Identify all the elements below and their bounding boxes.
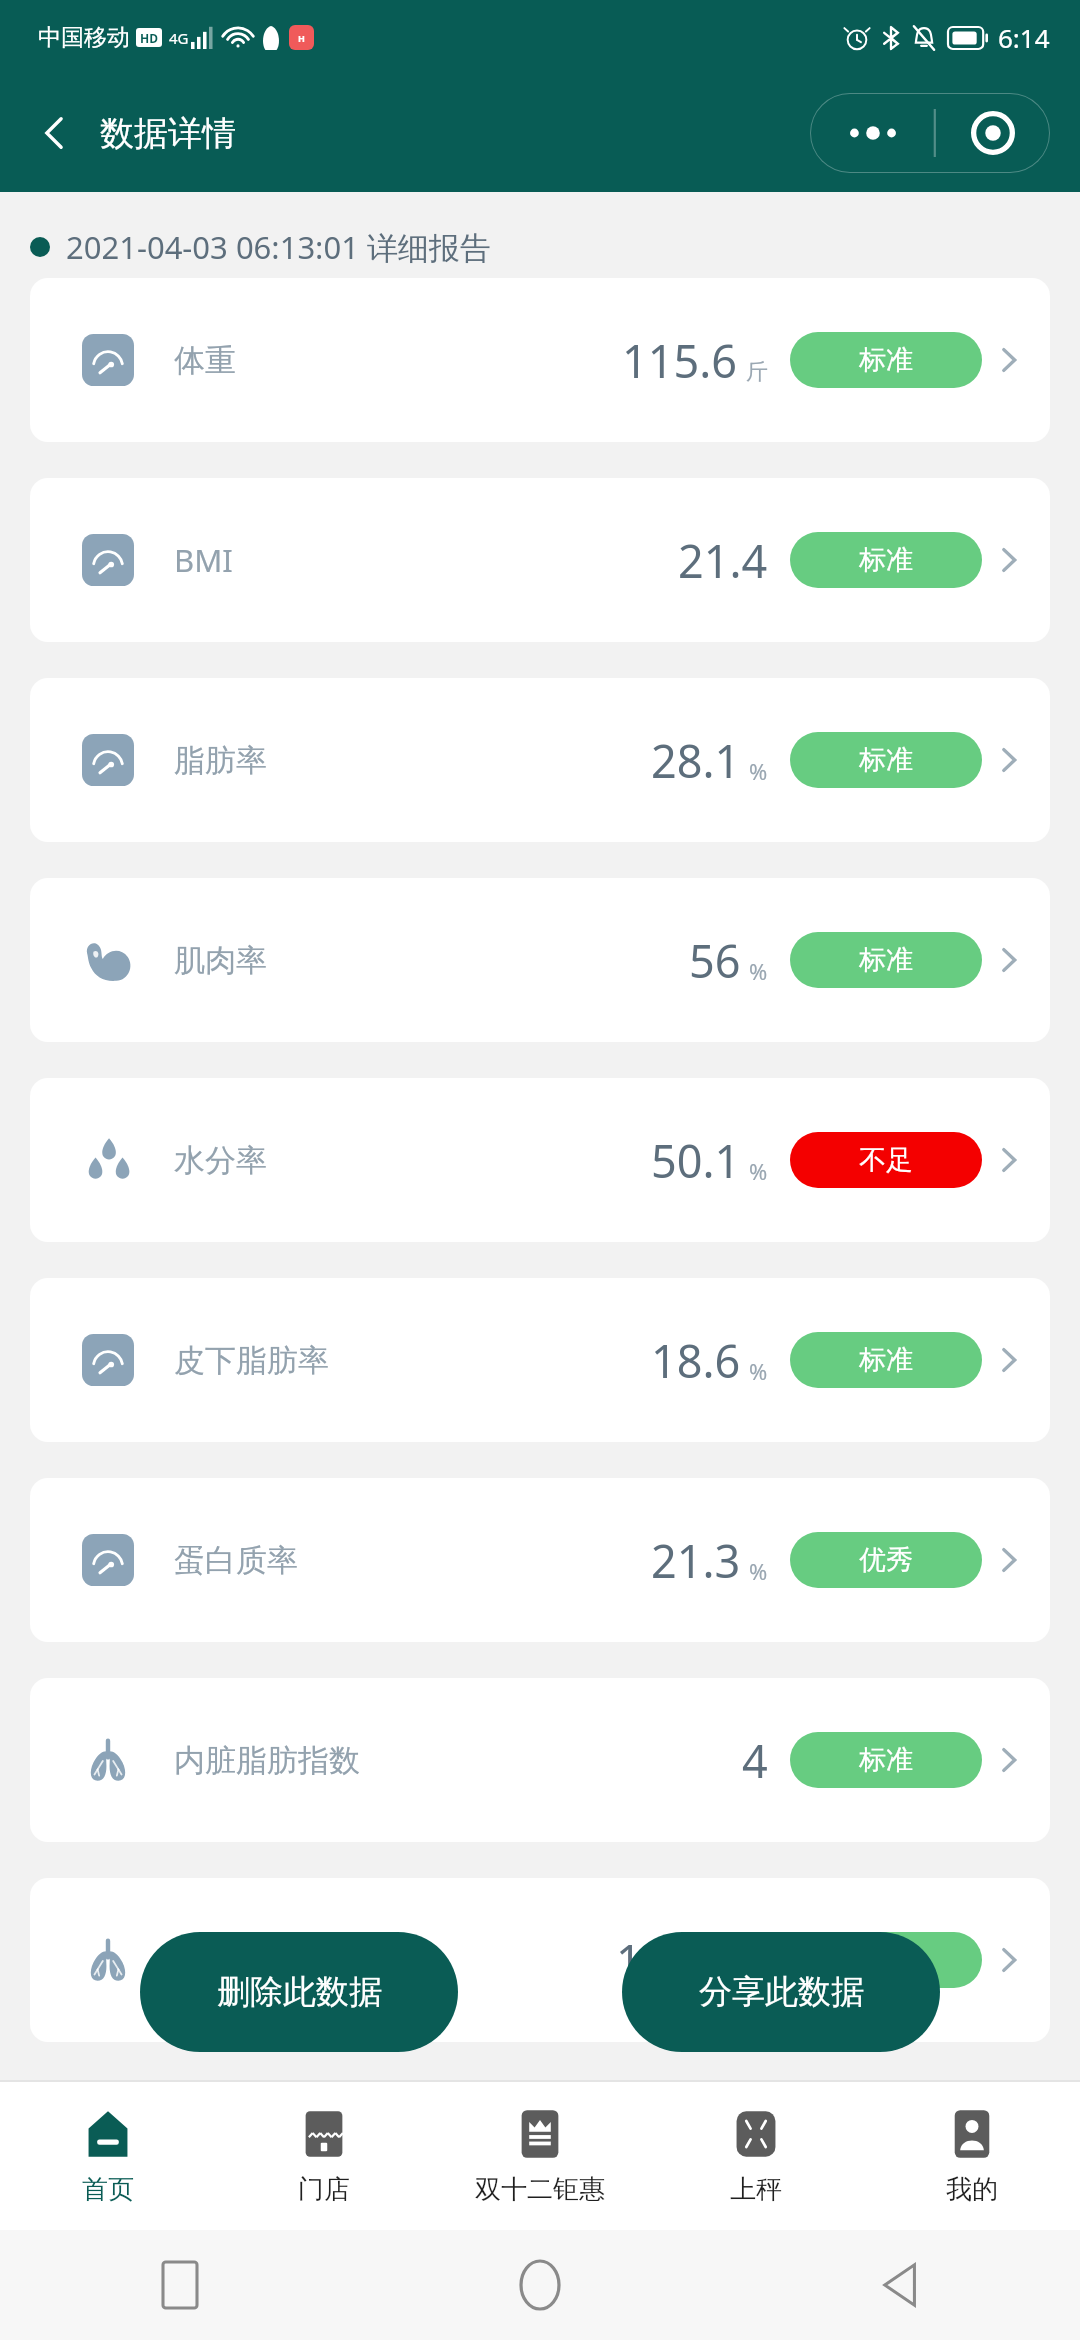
- staticText: 18.6: [651, 1330, 741, 1391]
- staticText: 我的: [946, 2173, 998, 2206]
- staticText: 首页: [82, 2173, 134, 2206]
- button[interactable]: 体重: [30, 278, 1050, 442]
- staticText: 6:14: [998, 20, 1050, 55]
- staticText: 1220: [616, 1930, 719, 1991]
- staticText: 内脏脂肪指数: [174, 1741, 360, 1780]
- staticText: 标准: [859, 1743, 913, 1777]
- button[interactable]: 关闭: [935, 93, 1050, 173]
- button[interactable]: 皮下脂肪率: [30, 1278, 1050, 1442]
- staticText: 皮下脂肪率: [174, 1341, 329, 1380]
- button[interactable]: 肌肉率: [30, 878, 1050, 1042]
- button[interactable]: 最近应用: [0, 2230, 360, 2340]
- staticText: 删除此数据: [217, 1971, 382, 2013]
- staticText: %: [749, 1156, 768, 1186]
- staticText: 双十二钜惠: [475, 2173, 605, 2206]
- staticText: %: [749, 956, 768, 986]
- staticText: 数据详情: [100, 112, 236, 155]
- staticText: 蛋白质率: [174, 1541, 298, 1580]
- button[interactable]: 蛋白质率: [30, 1478, 1050, 1642]
- button[interactable]: 脂肪率: [30, 678, 1050, 842]
- staticText: BMI: [174, 539, 233, 581]
- staticText: 不足: [859, 1143, 913, 1177]
- button[interactable]: 更多: [810, 93, 935, 173]
- staticText: kcal: [727, 1956, 768, 1986]
- staticText: 斤: [746, 358, 768, 386]
- button[interactable]: 主页: [360, 2230, 720, 2340]
- staticText: %: [749, 756, 768, 786]
- button[interactable]: 返回: [720, 2230, 1080, 2340]
- staticText: 标准: [859, 343, 913, 377]
- staticText: 标准: [859, 543, 913, 577]
- button[interactable]: 分享此数据: [622, 1932, 940, 2052]
- staticText: 中国移动: [38, 23, 130, 52]
- staticText: 115.6: [622, 330, 738, 391]
- staticText: 基础代谢率: [174, 1941, 329, 1980]
- staticText: 28.1: [651, 730, 741, 791]
- button[interactable]: 上秤: [648, 2082, 864, 2230]
- button[interactable]: 双十二钜惠: [432, 2082, 648, 2230]
- staticText: 门店: [298, 2173, 350, 2206]
- button[interactable]: 水分率: [30, 1078, 1050, 1242]
- staticText: 水分率: [174, 1141, 267, 1180]
- staticText: 50.1: [651, 1130, 741, 1191]
- staticText: 56: [689, 930, 741, 991]
- button[interactable]: 首页: [0, 2082, 216, 2230]
- staticText: 标准: [859, 943, 913, 977]
- button[interactable]: BMI: [30, 478, 1050, 642]
- staticText: 21.3: [651, 1530, 741, 1591]
- button[interactable]: 返回: [18, 96, 92, 170]
- staticText: 分享此数据: [699, 1971, 864, 2013]
- staticText: 肌肉率: [174, 941, 267, 980]
- staticText: HD: [140, 30, 158, 46]
- button[interactable]: 我的: [864, 2082, 1080, 2230]
- staticText: 2021-04-03 06:13:01 详细报告: [66, 226, 491, 268]
- staticText: 脂肪率: [174, 741, 267, 780]
- staticText: 4G: [169, 28, 189, 48]
- staticText: 标准: [859, 1343, 913, 1377]
- staticText: %: [749, 1556, 768, 1586]
- button[interactable]: 内脏脂肪指数: [30, 1678, 1050, 1842]
- staticText: %: [749, 1356, 768, 1386]
- button[interactable]: 门店: [216, 2082, 432, 2230]
- staticText: H: [298, 32, 305, 44]
- button[interactable]: 基础代谢率: [30, 1878, 1050, 2042]
- staticText: 优秀: [859, 1543, 913, 1577]
- staticText: 4: [742, 1730, 768, 1791]
- staticText: 上秤: [730, 2173, 782, 2206]
- staticText: 体重: [174, 341, 236, 380]
- staticText: 标准: [859, 743, 913, 777]
- button[interactable]: 删除此数据: [140, 1932, 458, 2052]
- staticText: 21.4: [678, 530, 768, 591]
